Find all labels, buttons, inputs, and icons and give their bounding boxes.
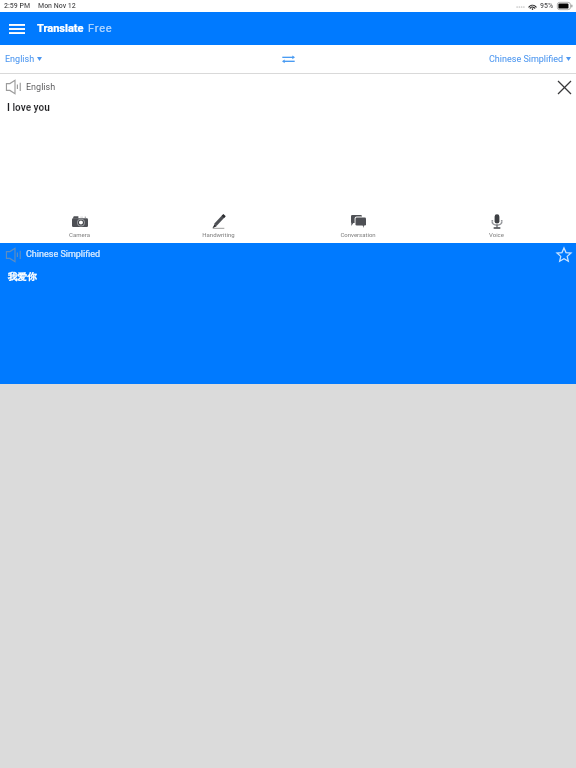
staticText: 95% (540, 2, 554, 10)
staticText: 我爱你 (8, 271, 37, 283)
staticText: Free (88, 22, 113, 35)
staticText: Voice (489, 231, 504, 238)
staticText: I love you (7, 102, 50, 114)
button[interactable]: Camera (10, 203, 149, 243)
staticText: 2:59 PM (4, 2, 31, 10)
button[interactable]: Clear text (553, 74, 576, 100)
staticText: Chinese Simplified (26, 249, 101, 260)
button[interactable]: Conversation (288, 203, 427, 243)
staticText: Handwriting (202, 231, 235, 238)
button[interactable]: Listen to Chinese translation (0, 243, 106, 266)
button[interactable]: Open navigation menu (0, 12, 33, 45)
staticText: English (5, 54, 35, 65)
staticText: Translate (37, 22, 84, 35)
staticText: Conversation (340, 231, 376, 238)
button[interactable]: Save to favourites (551, 243, 576, 266)
staticText: Chinese Simplified (489, 54, 564, 65)
staticText: Mon Nov 12 (38, 2, 76, 10)
button[interactable]: Chinese Simplified (483, 45, 576, 73)
staticText: English (26, 82, 56, 93)
staticText: Camera (69, 231, 90, 238)
button[interactable]: Swap languages (273, 45, 303, 73)
button[interactable]: Handwriting (149, 203, 288, 243)
button[interactable]: English (0, 45, 48, 73)
button[interactable]: Listen to English text (0, 74, 61, 100)
button[interactable]: Voice (427, 203, 566, 243)
